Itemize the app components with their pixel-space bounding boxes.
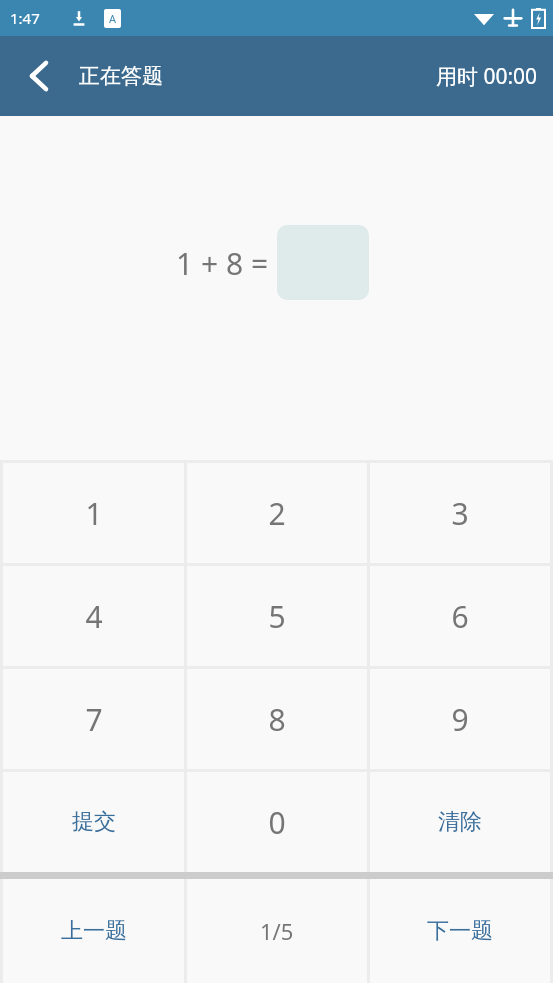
staticText: 0	[268, 802, 286, 843]
button[interactable]: 7	[3, 669, 184, 769]
staticText: 1	[85, 493, 103, 534]
button[interactable]: 上一题	[3, 879, 184, 983]
staticText: 3	[451, 493, 469, 534]
staticText: 7	[85, 699, 103, 740]
staticText: 5	[268, 596, 286, 637]
staticText: 6	[451, 596, 469, 637]
staticText: 4	[85, 596, 103, 637]
staticText: 1:47	[10, 8, 40, 28]
staticText: 上一题	[61, 917, 127, 945]
button[interactable]: 清除	[370, 772, 550, 872]
staticText: 2	[268, 493, 286, 534]
button[interactable]: 8	[187, 669, 367, 769]
button[interactable]: 2	[187, 463, 367, 563]
staticText: 1/5	[260, 916, 294, 946]
button[interactable]: 0	[187, 772, 367, 872]
button[interactable]: 下一题	[370, 879, 550, 983]
staticText: 9	[451, 699, 469, 740]
button[interactable]: 6	[370, 566, 550, 666]
staticText: 提交	[72, 808, 116, 836]
button[interactable]: 提交	[3, 772, 184, 872]
button[interactable]: 1	[3, 463, 184, 563]
staticText: 1 + 8 =	[176, 243, 269, 284]
staticText: 下一题	[427, 917, 493, 945]
staticText: 正在答题	[79, 63, 163, 89]
button[interactable]: 3	[370, 463, 550, 563]
staticText: A	[109, 11, 117, 26]
button[interactable]: 5	[187, 566, 367, 666]
staticText: 清除	[438, 808, 482, 836]
staticText: 8	[268, 699, 286, 740]
staticText: 用时 00:00	[436, 62, 538, 91]
button[interactable]: Back	[11, 48, 67, 104]
button[interactable]: 4	[3, 566, 184, 666]
button[interactable]: 9	[370, 669, 550, 769]
